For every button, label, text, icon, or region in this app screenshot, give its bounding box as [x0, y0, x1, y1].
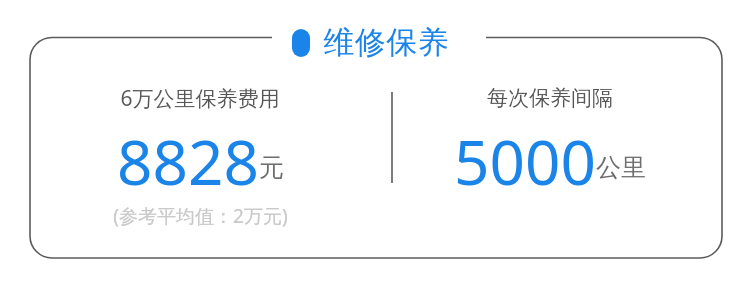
- staticText: 6万公里保养费用: [120, 84, 280, 112]
- staticText: 每次保养间隔: [487, 85, 613, 111]
- staticText: 元: [259, 152, 284, 183]
- staticText: 维修保养: [323, 23, 449, 62]
- staticText: 8828: [117, 119, 259, 191]
- other: 维修保养: [292, 29, 310, 57]
- staticText: 5000: [454, 119, 596, 191]
- staticText: (参考平均值：2万元): [113, 203, 288, 229]
- button[interactable]: 维修保养: [292, 23, 449, 62]
- staticText: 公里: [596, 152, 646, 183]
